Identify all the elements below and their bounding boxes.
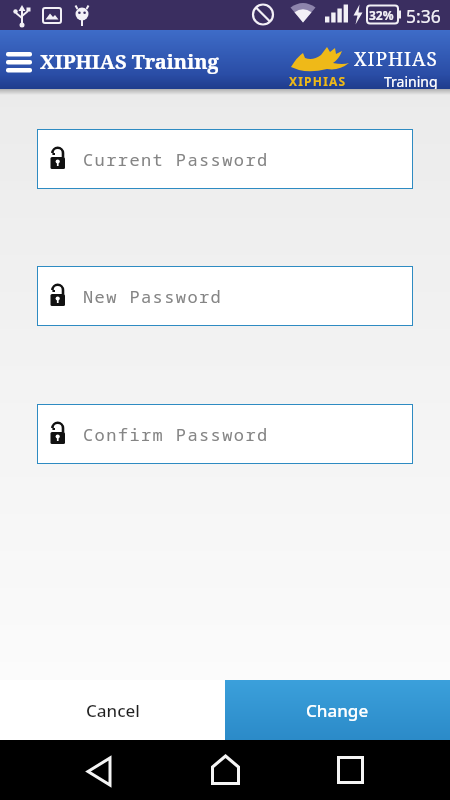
- button[interactable]: Cancel: [0, 680, 225, 740]
- staticText: New Password: [83, 285, 223, 308]
- button[interactable]: Confirm Password: [37, 404, 413, 464]
- button[interactable]: Current Password: [37, 129, 413, 189]
- staticText: Training: [384, 72, 438, 91]
- staticText: XIPHIAS: [289, 73, 347, 89]
- staticText: 5:36: [406, 4, 441, 28]
- staticText: XIPHIAS: [354, 46, 438, 72]
- button[interactable]: [0, 740, 150, 800]
- button[interactable]: [300, 740, 450, 800]
- staticText: Change: [306, 699, 369, 722]
- staticText: Confirm Password: [83, 423, 269, 446]
- staticText: 32%: [369, 7, 394, 23]
- button[interactable]: Change: [225, 680, 450, 740]
- staticText: XIPHIAS Training: [40, 48, 219, 75]
- button[interactable]: [6, 52, 34, 76]
- staticText: Cancel: [86, 699, 140, 722]
- staticText: Current Password: [83, 148, 269, 171]
- button[interactable]: [150, 740, 300, 800]
- button[interactable]: New Password: [37, 266, 413, 326]
